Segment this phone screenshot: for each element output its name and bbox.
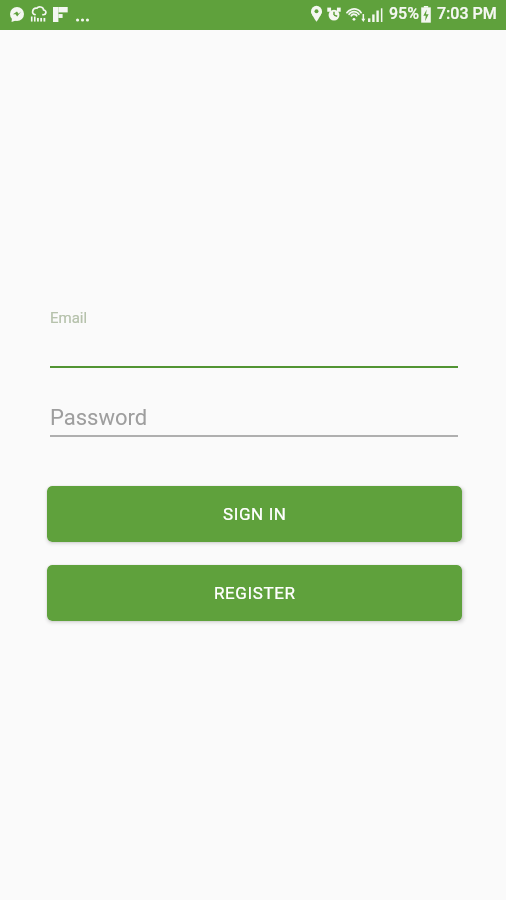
staticText: REGISTER [214, 583, 296, 603]
staticText: 7:03 PM [437, 4, 497, 23]
staticText: Password [50, 405, 148, 431]
button[interactable]: Email input field [50, 305, 458, 368]
staticText: 95% [389, 4, 419, 23]
button[interactable]: SIGN IN [47, 486, 462, 542]
button[interactable]: REGISTER [47, 565, 462, 621]
staticText: Email [50, 309, 88, 327]
button[interactable]: Password input field [50, 401, 458, 437]
staticText: SIGN IN [223, 504, 287, 524]
